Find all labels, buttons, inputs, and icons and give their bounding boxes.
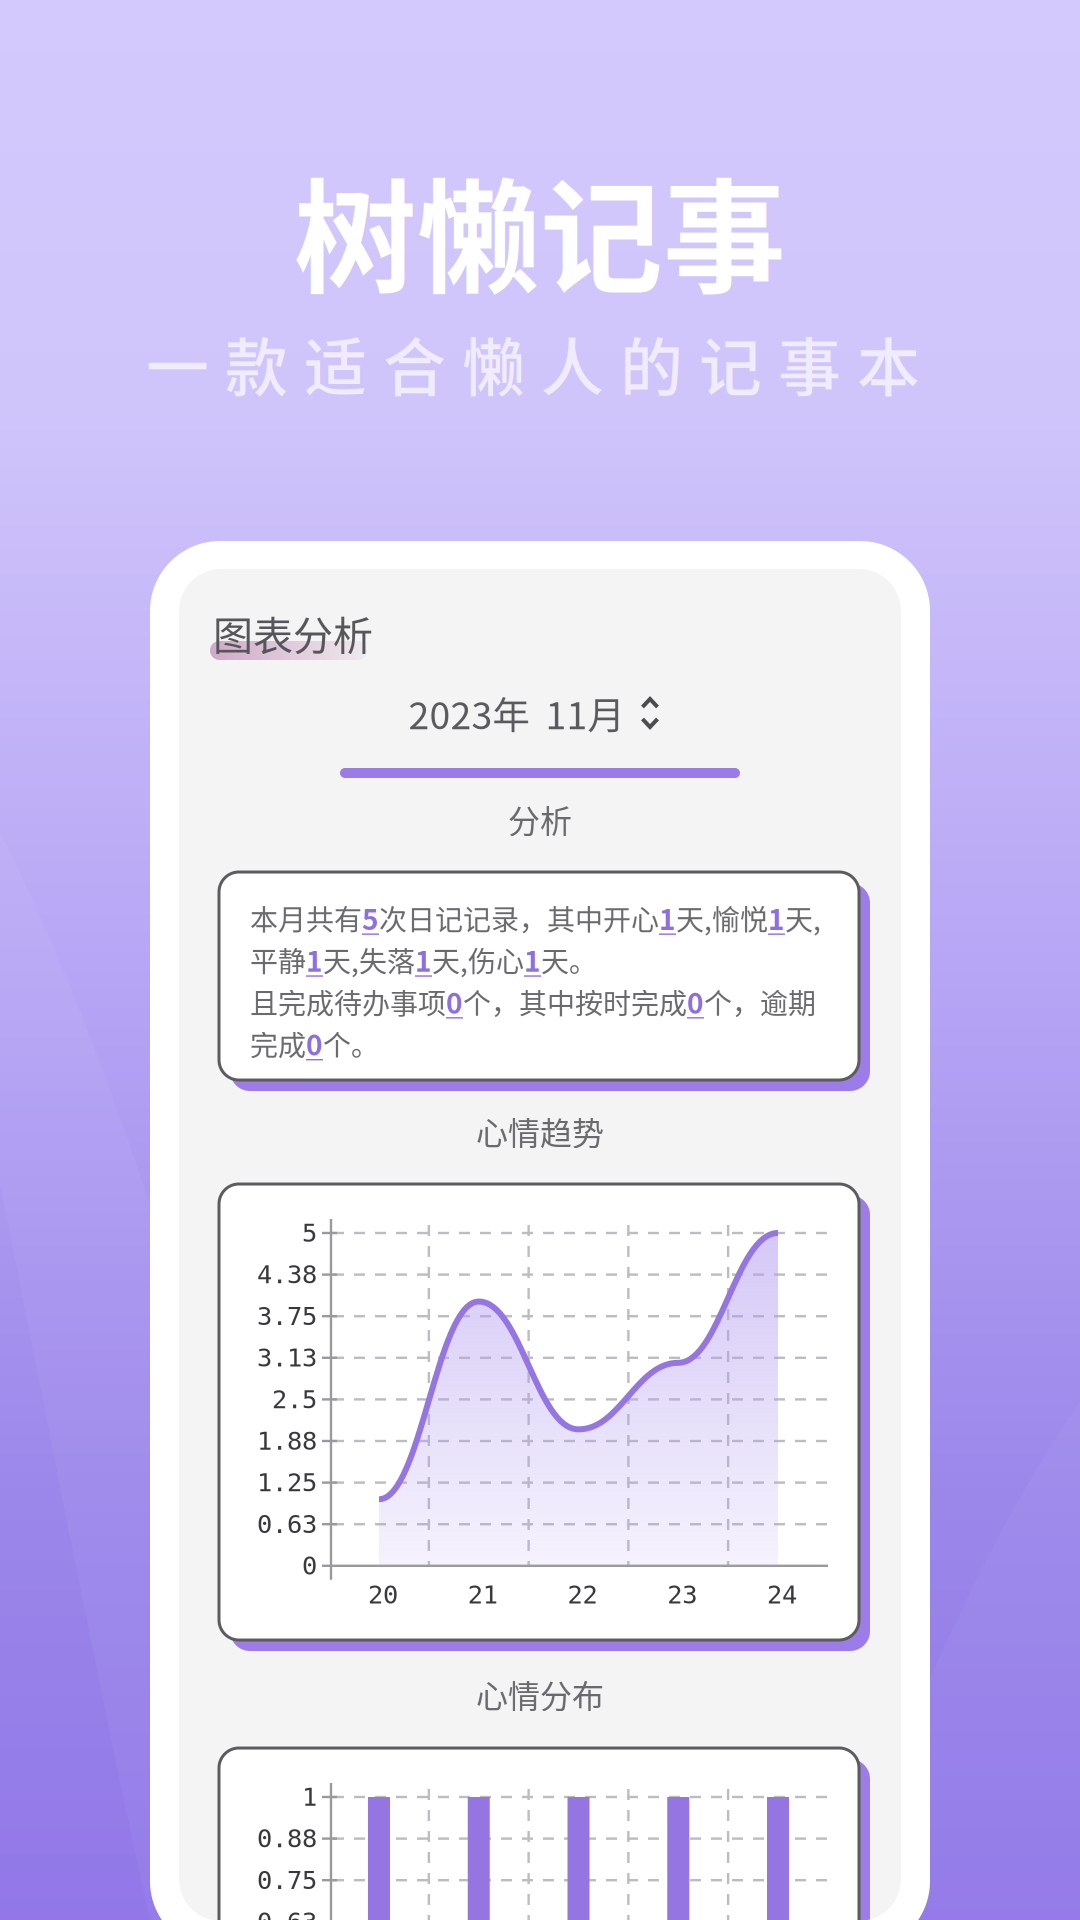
staticText: 一款适合懒人的记事本 — [146, 318, 920, 408]
staticText: 23 — [667, 1580, 697, 1610]
staticText: 心情趋势 — [476, 1108, 604, 1154]
staticText: 0.75 — [257, 1865, 317, 1895]
button[interactable]: 图表分析 — [213, 605, 473, 661]
staticText: 21 — [468, 1580, 498, 1610]
button[interactable]: 2023年 11月 — [173, 683, 895, 743]
staticText: 平静1天,失落1天,伤心1天。 — [250, 940, 597, 980]
staticText: 0.63 — [257, 1907, 317, 1920]
staticText: 2.5 — [272, 1385, 317, 1414]
staticText: 本月共有5次日记记录，其中开心1天,愉悦1天, — [250, 898, 821, 938]
staticText: 分析 — [508, 796, 572, 842]
staticText: 1 — [302, 1782, 317, 1812]
staticText: 1.25 — [257, 1468, 317, 1497]
staticText: 1.88 — [257, 1426, 317, 1456]
staticText: 0.63 — [257, 1509, 317, 1539]
staticText: 且完成待办事项0个，其中按时完成0个，逾期 — [250, 982, 816, 1021]
staticText: 3.75 — [257, 1301, 317, 1331]
staticText: 0 — [302, 1551, 317, 1581]
staticText: 完成0个。 — [250, 1023, 379, 1063]
staticText: 5 — [302, 1218, 317, 1248]
staticText: 0.88 — [257, 1824, 317, 1853]
staticText: 20 — [368, 1580, 398, 1610]
staticText: 心情分布 — [476, 1671, 604, 1717]
staticText: 22 — [567, 1580, 597, 1610]
staticText: 树懒记事 — [294, 140, 786, 318]
staticText: 图表分析 — [213, 604, 373, 662]
staticText: 2023年 11月 — [408, 686, 624, 740]
staticText: 4.38 — [257, 1260, 317, 1289]
staticText: 24 — [767, 1580, 797, 1610]
staticText: 3.13 — [257, 1343, 317, 1373]
